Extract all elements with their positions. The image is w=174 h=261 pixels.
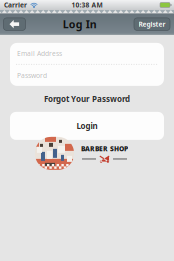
button[interactable]: Login xyxy=(10,112,164,140)
staticText: Password xyxy=(17,71,47,80)
staticText: Email Address xyxy=(17,49,62,58)
button[interactable]: Back xyxy=(3,18,25,30)
button[interactable]: Register xyxy=(134,18,170,30)
staticText: 10:38 AM xyxy=(71,1,102,9)
staticText: Forgot Your Password xyxy=(44,94,130,104)
staticText: Login xyxy=(76,121,97,131)
staticText: BARBER SHOP xyxy=(81,144,128,153)
staticText: Log In xyxy=(63,17,97,31)
staticText: Carrier xyxy=(4,1,27,9)
button[interactable]: Forgot Your Password xyxy=(10,86,164,112)
staticText: Register xyxy=(138,20,165,29)
